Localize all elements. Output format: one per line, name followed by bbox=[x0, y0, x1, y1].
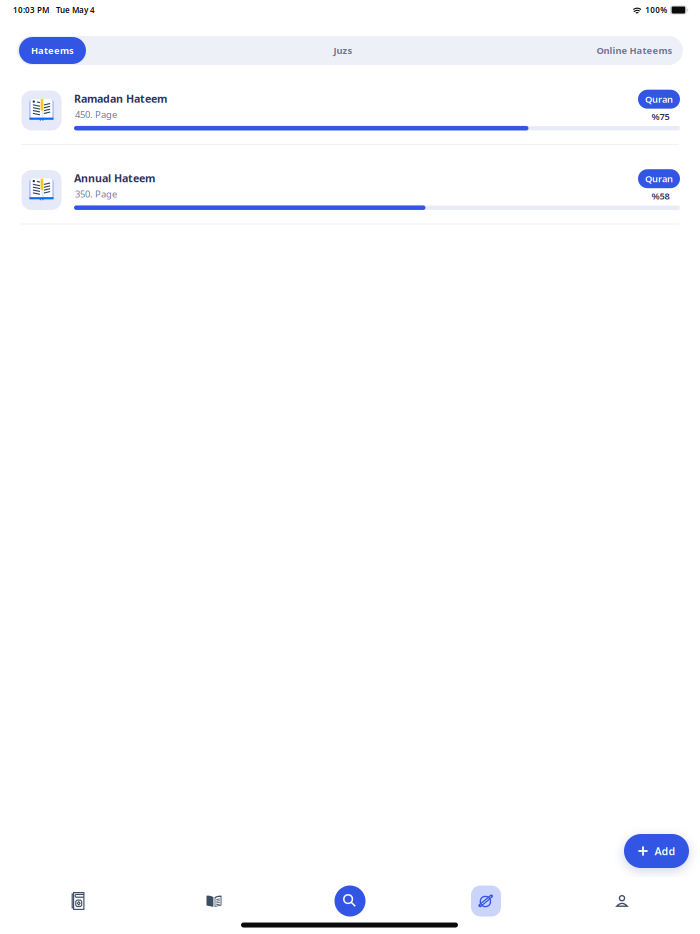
staticText: %75 bbox=[651, 110, 669, 123]
button[interactable]: Search bbox=[282, 877, 418, 925]
button[interactable]: Hateems bbox=[19, 37, 86, 64]
staticText: Add bbox=[654, 844, 675, 858]
staticText: Ramadan Hateem bbox=[74, 91, 167, 106]
button[interactable]: Annual Hateem bbox=[0, 154, 700, 224]
staticText: 450. Page bbox=[75, 108, 117, 121]
button[interactable]: Explore bbox=[418, 877, 554, 925]
staticText: 100% bbox=[645, 5, 667, 15]
staticText: 10:03 PM bbox=[13, 5, 49, 15]
button[interactable]: Read bbox=[146, 877, 282, 925]
staticText: Hateems bbox=[31, 44, 74, 57]
button[interactable]: Add bbox=[624, 834, 689, 868]
staticText: 350. Page bbox=[75, 188, 117, 200]
staticText: Quran bbox=[645, 93, 673, 105]
button[interactable]: Ramadan Hateem bbox=[0, 75, 700, 145]
button[interactable]: Juzs bbox=[283, 37, 403, 64]
staticText: Juzs bbox=[333, 44, 352, 57]
button[interactable]: Online Hateems bbox=[564, 37, 700, 64]
button[interactable]: Quran bbox=[10, 877, 146, 925]
staticText: Annual Hateem bbox=[74, 171, 155, 185]
staticText: %58 bbox=[651, 190, 669, 202]
staticText: Online Hateems bbox=[596, 44, 672, 57]
staticText: Tue May 4 bbox=[56, 5, 95, 15]
button[interactable]: Profile bbox=[554, 877, 690, 925]
staticText: Quran bbox=[645, 172, 673, 185]
